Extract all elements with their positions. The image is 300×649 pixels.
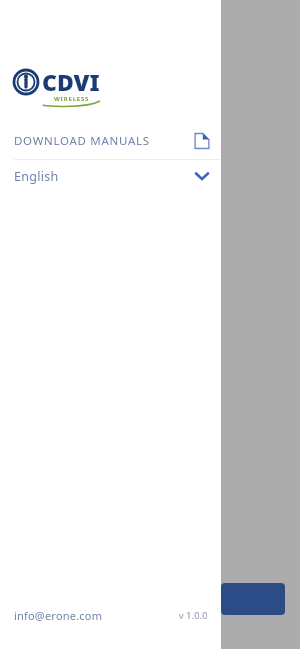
button[interactable]: Download manuals	[194, 133, 210, 149]
staticText: info@erone.com	[14, 608, 103, 623]
button[interactable]: DOWNLOAD MANUALS	[0, 123, 221, 159]
button[interactable]: Confirm	[221, 583, 285, 615]
staticText: WIRELESS	[54, 95, 90, 103]
button[interactable]: CDVI Wireless	[14, 66, 100, 109]
button[interactable]: English	[0, 160, 221, 192]
staticText: v 1.0.0	[179, 609, 208, 621]
button[interactable]: Select language	[193, 167, 211, 185]
staticText: English	[14, 168, 59, 185]
staticText: CDVI	[42, 66, 100, 97]
button[interactable]: info@erone.com	[14, 608, 103, 623]
staticText: DOWNLOAD MANUALS	[14, 133, 150, 149]
